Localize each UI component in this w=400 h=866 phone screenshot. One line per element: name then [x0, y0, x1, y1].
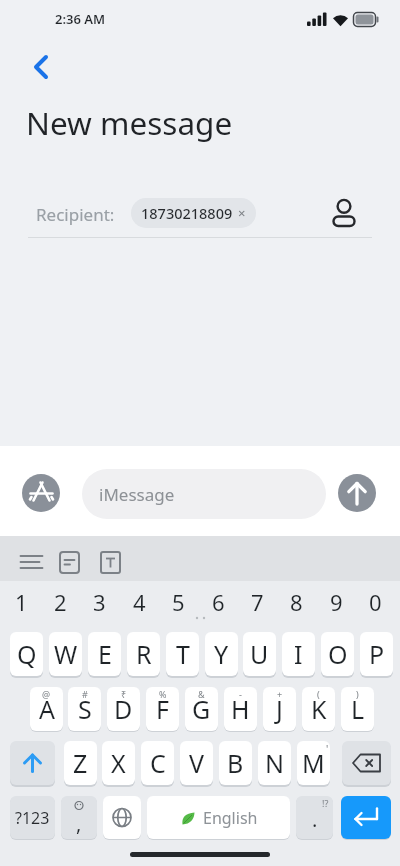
button[interactable]: F	[146, 687, 179, 731]
button[interactable]: K	[302, 687, 335, 731]
button[interactable]: 4	[123, 586, 156, 618]
button[interactable]: A	[30, 687, 63, 731]
button[interactable]: 1	[5, 586, 38, 618]
button[interactable]: L	[341, 687, 374, 731]
staticText: Q	[17, 637, 37, 671]
staticText: !?	[322, 797, 329, 809]
staticText: U	[250, 637, 269, 671]
button[interactable]: U	[243, 632, 276, 676]
staticText: R	[136, 637, 152, 671]
staticText: C	[150, 746, 166, 780]
button[interactable]	[338, 474, 376, 512]
staticText: 1	[15, 587, 28, 617]
staticText: B	[227, 746, 244, 780]
staticText: V	[189, 746, 205, 780]
button[interactable]: C	[141, 741, 174, 785]
button[interactable]: V	[180, 741, 213, 785]
staticText: O	[328, 637, 348, 671]
button[interactable]	[26, 48, 62, 84]
staticText: #	[82, 688, 88, 700]
button[interactable]: Z	[64, 741, 97, 785]
staticText: -	[239, 688, 242, 700]
staticText: 2:36 AM	[55, 10, 106, 28]
button[interactable]: R	[127, 632, 160, 676]
button[interactable]: H	[224, 687, 257, 731]
button[interactable]: 3	[83, 586, 116, 618]
staticText: '	[326, 742, 329, 754]
button[interactable]: I	[282, 632, 315, 676]
staticText: P	[369, 637, 385, 671]
staticText: @	[42, 688, 51, 700]
button[interactable]: Y	[205, 632, 238, 676]
button[interactable]: 18730218809	[131, 198, 256, 228]
staticText: F	[156, 692, 169, 726]
button[interactable]	[341, 796, 391, 839]
button[interactable]: 8	[280, 586, 313, 618]
staticText: 18730218809	[141, 203, 233, 223]
button[interactable]: ,	[61, 796, 97, 839]
button[interactable]: W	[49, 632, 82, 676]
staticText: (	[317, 688, 320, 700]
staticText: Y	[214, 637, 229, 671]
button[interactable]: M	[297, 741, 330, 785]
staticText: ×	[238, 204, 246, 222]
button[interactable]: P	[360, 632, 393, 676]
staticText: E	[98, 637, 112, 671]
staticText: 6	[212, 587, 225, 617]
button[interactable]: Q	[10, 632, 43, 676]
button[interactable]: ?123	[10, 796, 55, 839]
staticText: &	[198, 688, 205, 700]
button[interactable]	[59, 551, 81, 575]
staticText: iMessage	[99, 483, 175, 506]
button[interactable]: English	[147, 796, 290, 839]
staticText: M	[302, 746, 325, 780]
staticText: ₹	[121, 688, 127, 700]
button[interactable]: 5	[162, 586, 195, 618]
staticText: J	[276, 692, 283, 726]
button[interactable]: S	[68, 687, 101, 731]
button[interactable]: E	[88, 632, 121, 676]
staticText: +	[277, 688, 283, 700]
button[interactable]	[22, 474, 60, 512]
staticText: )	[356, 688, 359, 700]
button[interactable]: iMessage	[82, 469, 326, 519]
staticText: T	[176, 637, 190, 671]
button[interactable]: O	[321, 632, 354, 676]
button[interactable]	[328, 194, 360, 232]
button[interactable]: G	[185, 687, 218, 731]
staticText: I	[294, 637, 303, 671]
staticText: 3	[93, 587, 106, 617]
staticText: L	[351, 692, 365, 726]
button[interactable]: 7	[241, 586, 274, 618]
staticText: 0	[369, 587, 382, 617]
staticText: H	[231, 692, 250, 726]
button[interactable]: X	[102, 741, 135, 785]
staticText: Z	[73, 746, 88, 780]
staticText: Recipient:	[36, 203, 115, 226]
button[interactable]: T	[166, 632, 199, 676]
button[interactable]: D	[107, 687, 140, 731]
button[interactable]: N	[258, 741, 291, 785]
staticText: ?123	[15, 807, 50, 829]
staticText: 5	[172, 587, 185, 617]
button[interactable]: B	[219, 741, 252, 785]
staticText: X	[111, 746, 126, 780]
button[interactable]	[103, 796, 141, 839]
button[interactable]: 9	[320, 586, 353, 618]
staticText: New message	[26, 101, 233, 144]
staticText: A	[39, 692, 55, 726]
button[interactable]	[342, 741, 391, 785]
staticText: N	[265, 746, 285, 780]
staticText: S	[78, 692, 92, 726]
button[interactable]: .	[296, 796, 333, 839]
staticText: 2	[54, 587, 67, 617]
staticText: D	[114, 692, 133, 726]
button[interactable]: J	[263, 687, 296, 731]
button[interactable]: 0	[359, 586, 392, 618]
button[interactable]	[100, 551, 122, 575]
button[interactable]	[18, 548, 46, 576]
button[interactable]: 2	[44, 586, 77, 618]
button[interactable]	[10, 741, 55, 785]
button[interactable]: 6	[202, 586, 235, 618]
staticText: W	[54, 637, 78, 671]
